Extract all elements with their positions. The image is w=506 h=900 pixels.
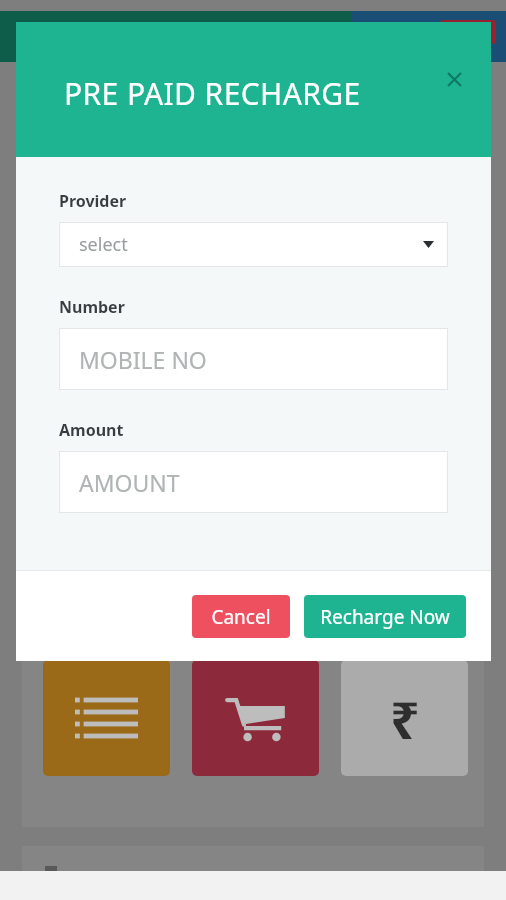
button[interactable]: Close	[437, 62, 471, 96]
button[interactable]: Shortcut	[192, 660, 319, 776]
staticText: PRE PAID RECHARGE	[64, 73, 361, 114]
staticText: Recharge Now	[320, 604, 450, 630]
staticText: Amount	[59, 419, 124, 441]
staticText: select	[79, 232, 128, 257]
staticText: ₹	[390, 683, 420, 754]
button[interactable]: Shortcut	[43, 660, 170, 776]
staticText: Cancel	[211, 604, 271, 630]
staticText: MOBILE NO	[79, 344, 207, 375]
button[interactable]: Recharge Now	[304, 595, 466, 638]
staticText: Provider	[59, 190, 127, 212]
button[interactable]: Cancel	[192, 595, 290, 638]
button[interactable]: AMOUNT	[59, 451, 448, 513]
staticText: AMOUNT	[79, 467, 180, 498]
staticText: Number	[59, 296, 125, 318]
button[interactable]: Select provider	[59, 222, 448, 267]
button[interactable]: Shortcut	[341, 660, 468, 776]
button[interactable]: MOBILE NO	[59, 328, 448, 390]
